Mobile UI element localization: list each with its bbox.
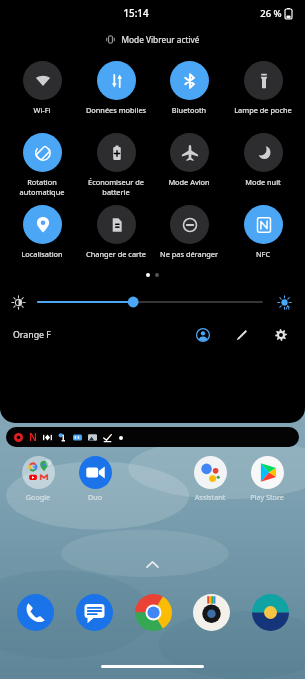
staticText: Mode nuit: [228, 177, 298, 187]
button[interactable]: Localisation: [7, 205, 77, 259]
button[interactable]: Notifications: [6, 427, 299, 447]
button[interactable]: Wi-Fi: [7, 61, 77, 115]
staticText: Orange F: [13, 329, 51, 341]
button[interactable]: Messages: [73, 591, 115, 633]
button[interactable]: Luminosité: [38, 291, 262, 313]
staticText: 15:14: [123, 7, 149, 20]
button[interactable]: Modifier: [231, 324, 253, 346]
staticText: 26 %: [260, 7, 282, 20]
button[interactable]: Google: [10, 456, 66, 502]
button[interactable]: Données mobiles: [81, 61, 151, 115]
button[interactable]: Play Store: [239, 456, 295, 502]
staticText: Bluetooth: [154, 105, 224, 115]
staticText: Rotation automatique: [7, 177, 77, 197]
staticText: Mode Vibreur activé: [121, 34, 200, 45]
staticText: Mode Avion: [154, 177, 224, 187]
staticText: Lampe de poche: [228, 105, 298, 115]
staticText: Changer de carte: [81, 249, 151, 259]
staticText: Assistant: [182, 492, 238, 502]
button[interactable]: Lampe de poche: [228, 61, 298, 115]
button[interactable]: Appareil photo: [190, 591, 232, 633]
button[interactable]: Téléphone: [14, 591, 56, 633]
button[interactable]: Utilisateur: [192, 324, 214, 346]
button[interactable]: Bluetooth: [154, 61, 224, 115]
button[interactable]: Luminosité automatique: [274, 292, 294, 312]
button[interactable]: Mode nuit: [228, 133, 298, 187]
staticText: Duo: [67, 492, 123, 502]
button[interactable]: NFC: [228, 205, 298, 259]
staticText: Google: [10, 492, 66, 502]
staticText: Play Store: [239, 492, 295, 502]
button[interactable]: Mode Avion: [154, 133, 224, 187]
button[interactable]: Économiseur de batterie: [81, 133, 151, 197]
button[interactable]: Assistant: [182, 456, 238, 502]
staticText: Localisation: [7, 249, 77, 259]
staticText: Ne pas déranger: [154, 249, 224, 259]
button[interactable]: Météo: [249, 591, 291, 633]
button[interactable]: Paramètres: [270, 324, 292, 346]
staticText: Wi-Fi: [7, 105, 77, 115]
staticText: NFC: [228, 249, 298, 259]
staticText: Économiseur de batterie: [81, 177, 151, 197]
button[interactable]: Ne pas déranger: [154, 205, 224, 259]
button[interactable]: Chrome: [132, 591, 174, 633]
staticText: N: [29, 431, 37, 444]
button[interactable]: Changer de carte: [81, 205, 151, 259]
staticText: Données mobiles: [81, 105, 151, 115]
button[interactable]: Rotation automatique: [7, 133, 77, 197]
button[interactable]: Duo: [67, 456, 123, 502]
